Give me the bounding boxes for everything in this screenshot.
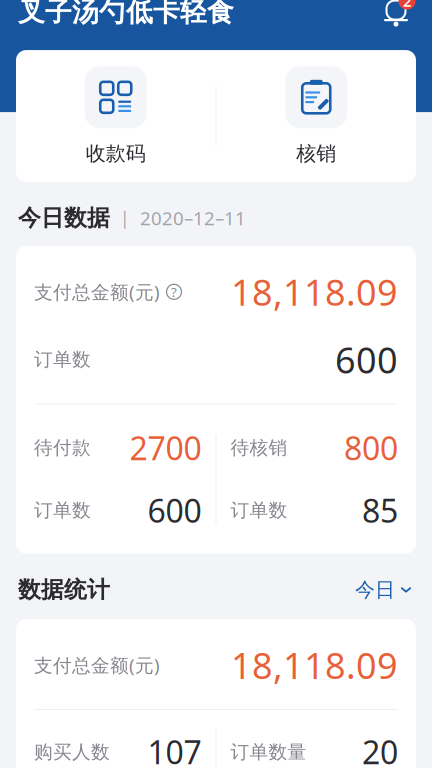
staticText: 订单数 xyxy=(34,499,91,522)
staticText: 600 xyxy=(147,489,201,531)
staticText: 数据统计 xyxy=(18,576,110,604)
staticText: 2700 xyxy=(129,426,201,469)
staticText: 2020–12–11 xyxy=(140,206,246,230)
staticText: 18,118.09 xyxy=(231,641,398,689)
staticText: | xyxy=(110,206,140,229)
staticText: 107 xyxy=(147,731,201,768)
staticText: 支付总金额(元) xyxy=(34,653,160,677)
staticText: 2 xyxy=(403,0,411,11)
staticText: 订单数量 xyxy=(230,740,306,763)
staticText: 待核销 xyxy=(230,436,287,459)
staticText: 今日数据 xyxy=(18,204,110,232)
staticText: 支付总金额(元) xyxy=(34,279,160,304)
staticText: 核销 xyxy=(296,141,336,166)
button[interactable]: 今日 xyxy=(353,573,414,606)
staticText: 18,118.09 xyxy=(231,268,398,316)
button[interactable]: Notifications xyxy=(376,0,416,31)
staticText: 叉子汤勺低卡轻食 xyxy=(18,0,234,28)
staticText: 订单数 xyxy=(230,499,287,522)
staticText: 待付款 xyxy=(34,436,91,459)
staticText: 收款码 xyxy=(86,141,146,166)
staticText: 800 xyxy=(344,426,398,469)
staticText: 85 xyxy=(362,489,398,531)
staticText: 今日 xyxy=(355,577,395,602)
staticText: 订单数 xyxy=(34,348,91,371)
button[interactable]: 收款码 xyxy=(16,50,215,182)
staticText: ? xyxy=(171,283,177,301)
button[interactable]: 核销 xyxy=(216,50,416,182)
staticText: 购买人数 xyxy=(34,740,110,763)
staticText: 20 xyxy=(362,731,398,768)
staticText: 600 xyxy=(335,336,398,383)
